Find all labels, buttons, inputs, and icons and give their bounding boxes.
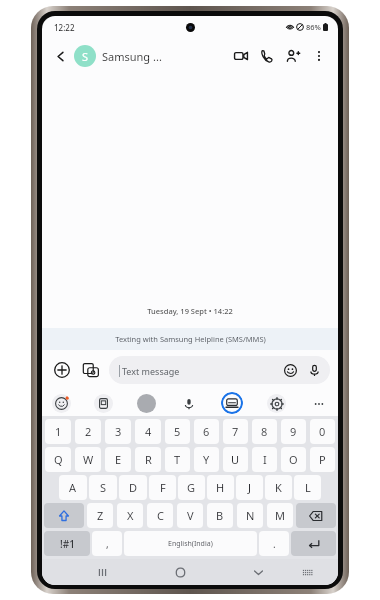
button[interactable]: Y bbox=[194, 447, 219, 472]
button[interactable]: E bbox=[105, 447, 131, 472]
button[interactable]: English(India) bbox=[124, 531, 257, 556]
staticText: A bbox=[69, 480, 77, 495]
button[interactable]: T bbox=[165, 447, 190, 472]
button[interactable]: U bbox=[223, 447, 248, 472]
staticText: R bbox=[145, 452, 152, 467]
button[interactable]: Home bbox=[167, 559, 193, 585]
button[interactable]: M bbox=[267, 503, 293, 528]
button[interactable]: I bbox=[252, 447, 277, 472]
staticText: 12:22 bbox=[54, 22, 75, 33]
staticText: T bbox=[174, 452, 181, 467]
button[interactable]: Settings bbox=[267, 394, 286, 413]
staticText: 2 bbox=[85, 424, 92, 439]
button[interactable]: 0 bbox=[310, 419, 335, 444]
button[interactable]: , bbox=[92, 531, 122, 556]
button[interactable]: W bbox=[75, 447, 101, 472]
staticText: L bbox=[305, 480, 311, 495]
staticText: M bbox=[275, 508, 285, 523]
button[interactable]: S bbox=[89, 475, 117, 500]
staticText: 8 bbox=[261, 424, 268, 439]
button[interactable]: !#1 bbox=[44, 531, 90, 556]
button[interactable]: Q bbox=[45, 447, 71, 472]
button[interactable]: 6 bbox=[194, 419, 219, 444]
button[interactable]: More options bbox=[306, 43, 332, 69]
button[interactable]: B bbox=[207, 503, 233, 528]
button[interactable]: Hide keyboard bbox=[245, 559, 271, 585]
button[interactable]: 2 bbox=[75, 419, 101, 444]
button[interactable]: K bbox=[265, 475, 292, 500]
button[interactable]: L bbox=[294, 475, 321, 500]
staticText: 4 bbox=[145, 424, 152, 439]
staticText: Q bbox=[54, 452, 63, 467]
button[interactable]: 5 bbox=[165, 419, 190, 444]
button[interactable]: Text message bbox=[109, 356, 330, 384]
button[interactable]: N bbox=[237, 503, 263, 528]
staticText: F bbox=[160, 480, 166, 495]
button[interactable]: More bbox=[309, 394, 328, 413]
button[interactable]: Translate bbox=[137, 394, 156, 413]
button[interactable]: V bbox=[177, 503, 203, 528]
button[interactable]: Add attachment bbox=[50, 358, 74, 382]
button[interactable]: O bbox=[281, 447, 306, 472]
button[interactable]: Recents bbox=[89, 559, 115, 585]
staticText: Tuesday, 19 Sept • 14:22 bbox=[42, 306, 338, 316]
staticText: English(India) bbox=[168, 539, 213, 549]
staticText: J bbox=[248, 480, 252, 495]
button[interactable]: Backspace bbox=[296, 503, 336, 528]
staticText: 3 bbox=[115, 424, 122, 439]
button[interactable]: Add person bbox=[280, 43, 306, 69]
button[interactable]: Clipboard bbox=[94, 394, 113, 413]
staticText: G bbox=[187, 480, 196, 495]
button[interactable]: A bbox=[59, 475, 87, 500]
staticText: , bbox=[106, 537, 109, 551]
staticText: B bbox=[216, 508, 224, 523]
button[interactable]: Emoji bbox=[52, 394, 71, 413]
staticText: U bbox=[231, 452, 240, 467]
button[interactable]: Keyboard modes bbox=[221, 392, 243, 414]
staticText: 6 bbox=[203, 424, 210, 439]
button[interactable]: G bbox=[178, 475, 205, 500]
button[interactable]: Enter bbox=[291, 531, 336, 556]
button[interactable]: R bbox=[135, 447, 161, 472]
staticText: Texting with Samsung Helpline (SMS/MMS) bbox=[115, 334, 266, 344]
button[interactable]: X bbox=[117, 503, 143, 528]
button[interactable]: Voice typing bbox=[179, 394, 198, 413]
staticText: K bbox=[275, 480, 282, 495]
staticText: E bbox=[115, 452, 122, 467]
button[interactable]: 7 bbox=[223, 419, 248, 444]
staticText: 7 bbox=[232, 424, 239, 439]
button[interactable]: J bbox=[236, 475, 263, 500]
button[interactable]: Call bbox=[254, 43, 280, 69]
staticText: D bbox=[129, 480, 138, 495]
staticText: Text message bbox=[122, 365, 180, 377]
staticText: Z bbox=[97, 508, 104, 523]
staticText: W bbox=[83, 452, 94, 467]
button[interactable]: 4 bbox=[135, 419, 161, 444]
button[interactable]: 1 bbox=[45, 419, 71, 444]
button[interactable]: S bbox=[74, 45, 228, 67]
staticText: Samsung ... bbox=[102, 49, 162, 64]
button[interactable]: 3 bbox=[105, 419, 131, 444]
staticText: H bbox=[216, 480, 225, 495]
button[interactable]: Camera gallery bbox=[79, 358, 103, 382]
staticText: P bbox=[319, 452, 326, 467]
button[interactable]: Back bbox=[48, 44, 72, 68]
staticText: 5 bbox=[174, 424, 181, 439]
button[interactable]: Switch keyboard bbox=[294, 559, 320, 585]
button[interactable]: . bbox=[259, 531, 289, 556]
button[interactable]: 8 bbox=[252, 419, 277, 444]
staticText: . bbox=[273, 537, 276, 551]
button[interactable]: 9 bbox=[281, 419, 306, 444]
button[interactable]: D bbox=[119, 475, 147, 500]
staticText: V bbox=[187, 508, 194, 523]
button[interactable]: P bbox=[310, 447, 335, 472]
staticText: Y bbox=[203, 452, 210, 467]
button[interactable]: C bbox=[147, 503, 173, 528]
staticText: 9 bbox=[290, 424, 297, 439]
button[interactable]: F bbox=[149, 475, 176, 500]
button[interactable]: Shift bbox=[44, 503, 84, 528]
button[interactable]: Z bbox=[87, 503, 113, 528]
button[interactable]: Video call bbox=[228, 43, 254, 69]
button[interactable]: H bbox=[207, 475, 234, 500]
staticText: O bbox=[289, 452, 298, 467]
